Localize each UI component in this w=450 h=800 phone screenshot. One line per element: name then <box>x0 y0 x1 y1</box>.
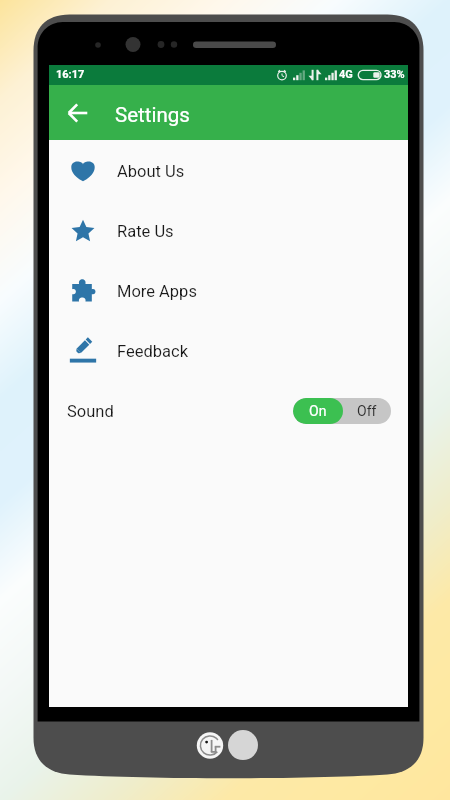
staticText: Settings <box>115 103 190 127</box>
staticText: Rate Us <box>117 222 174 241</box>
button[interactable]: Back <box>59 94 97 132</box>
staticText: Feedback <box>117 342 188 361</box>
button[interactable]: On <box>293 398 391 424</box>
staticText: 16:17 <box>56 68 85 81</box>
staticText: More Apps <box>117 282 197 301</box>
staticText: Off <box>357 403 377 419</box>
staticText: On <box>309 403 327 419</box>
staticText: About Us <box>117 162 185 181</box>
button[interactable]: Rate Us <box>49 201 408 261</box>
staticText: 4G <box>339 68 353 81</box>
staticText: 33% <box>384 68 405 81</box>
button[interactable]: Feedback <box>49 321 408 381</box>
button[interactable]: About Us <box>49 141 408 201</box>
button[interactable]: More Apps <box>49 261 408 321</box>
staticText: Sound <box>67 402 114 421</box>
